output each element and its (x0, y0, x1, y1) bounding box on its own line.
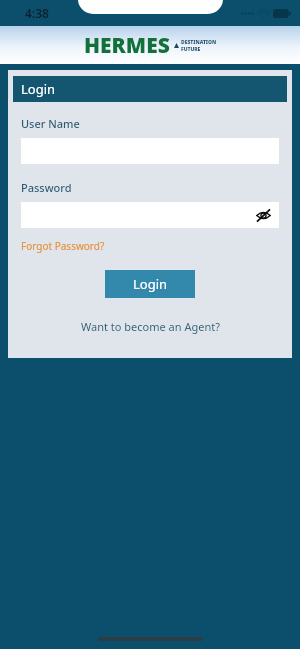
staticText: Login (133, 275, 168, 293)
button[interactable]: Login (13, 76, 287, 102)
staticText: HERMES (84, 31, 170, 60)
staticText: FUTURE (181, 46, 201, 53)
staticText: Password (21, 180, 72, 195)
button[interactable]: Forgot Password? (21, 239, 105, 253)
button[interactable]: Show password (21, 202, 279, 228)
button[interactable]: Login (105, 270, 195, 298)
staticText: User Name (21, 116, 80, 131)
staticText: 4:38 (25, 5, 49, 21)
staticText: Login (21, 80, 56, 98)
staticText: Forgot Password? (21, 239, 105, 253)
button[interactable]: Want to become an Agent? (81, 319, 220, 334)
staticText: Want to become an Agent? (81, 319, 220, 334)
button[interactable]: Show password (253, 205, 273, 225)
staticText: DESTINATION (181, 39, 217, 46)
